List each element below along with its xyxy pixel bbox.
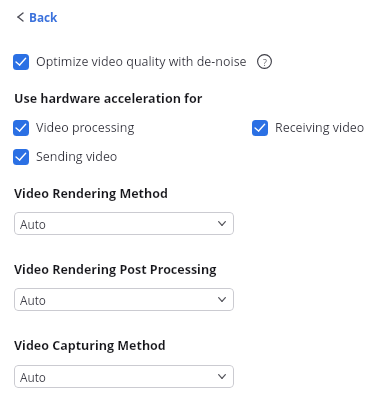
button[interactable]: Help [257, 54, 272, 69]
staticText: Video processing [36, 119, 135, 136]
staticText: Use hardware acceleration for [14, 90, 203, 107]
staticText: Auto [20, 292, 46, 308]
button[interactable]: Auto [14, 365, 234, 388]
staticText: Optimize video quality with de-noise [36, 53, 247, 70]
staticText: Video Capturing Method [14, 337, 166, 354]
button[interactable]: Sending video [13, 148, 118, 165]
staticText: Video Rendering Method [14, 185, 168, 202]
button[interactable]: Auto [14, 212, 234, 235]
button[interactable]: Receiving video [252, 119, 365, 136]
button[interactable]: Auto [14, 288, 234, 311]
staticText: Auto [20, 216, 46, 232]
staticText: Sending video [36, 148, 118, 165]
staticText: Back [29, 9, 58, 25]
staticText: Auto [20, 369, 46, 385]
staticText: Receiving video [275, 119, 365, 136]
button[interactable]: Optimize video quality with de-noise [13, 53, 247, 70]
staticText: ? [263, 56, 267, 68]
staticText: Video Rendering Post Processing [14, 261, 217, 278]
button[interactable]: Back [15, 6, 61, 28]
button[interactable]: Video processing [13, 119, 135, 136]
